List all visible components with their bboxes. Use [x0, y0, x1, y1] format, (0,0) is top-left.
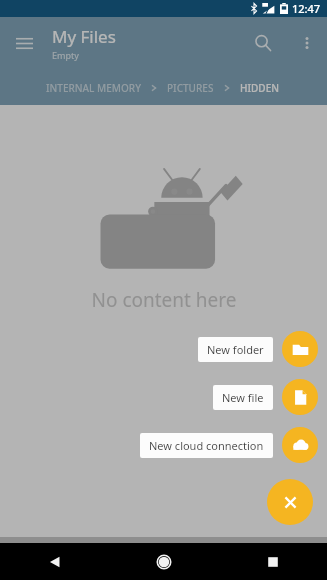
button[interactable]: New folder — [198, 337, 273, 362]
button[interactable]: INTERNAL MEMORY — [44, 77, 143, 99]
button[interactable]: PICTURES — [165, 77, 216, 99]
staticText: INTERNAL MEMORY — [46, 81, 141, 95]
button[interactable]: Back — [32, 543, 78, 580]
button[interactable]: HIDDEN — [238, 77, 281, 99]
button[interactable]: More options — [287, 23, 327, 63]
button[interactable]: New cloud connection — [282, 427, 318, 463]
staticText: New cloud connection — [149, 438, 264, 453]
button[interactable]: Recent apps — [250, 543, 296, 580]
button[interactable]: New file — [213, 385, 273, 410]
staticText: HIDDEN — [240, 81, 279, 95]
staticText: 12:47 — [292, 1, 321, 16]
staticText: New file — [222, 390, 264, 405]
staticText: Empty — [52, 49, 79, 61]
button[interactable]: Home — [141, 543, 187, 580]
button[interactable]: Close menu — [267, 479, 313, 525]
button[interactable]: New cloud connection — [140, 433, 273, 458]
staticText: No content here — [54, 287, 274, 313]
button[interactable]: Navigation drawer — [0, 19, 48, 67]
staticText: PICTURES — [167, 81, 214, 95]
staticText: New folder — [207, 342, 264, 357]
button[interactable] — [0, 17, 327, 537]
button[interactable]: Search — [239, 19, 287, 67]
staticText: My Files — [52, 25, 116, 48]
button[interactable]: New folder — [282, 331, 318, 367]
button[interactable]: New file — [282, 379, 318, 415]
